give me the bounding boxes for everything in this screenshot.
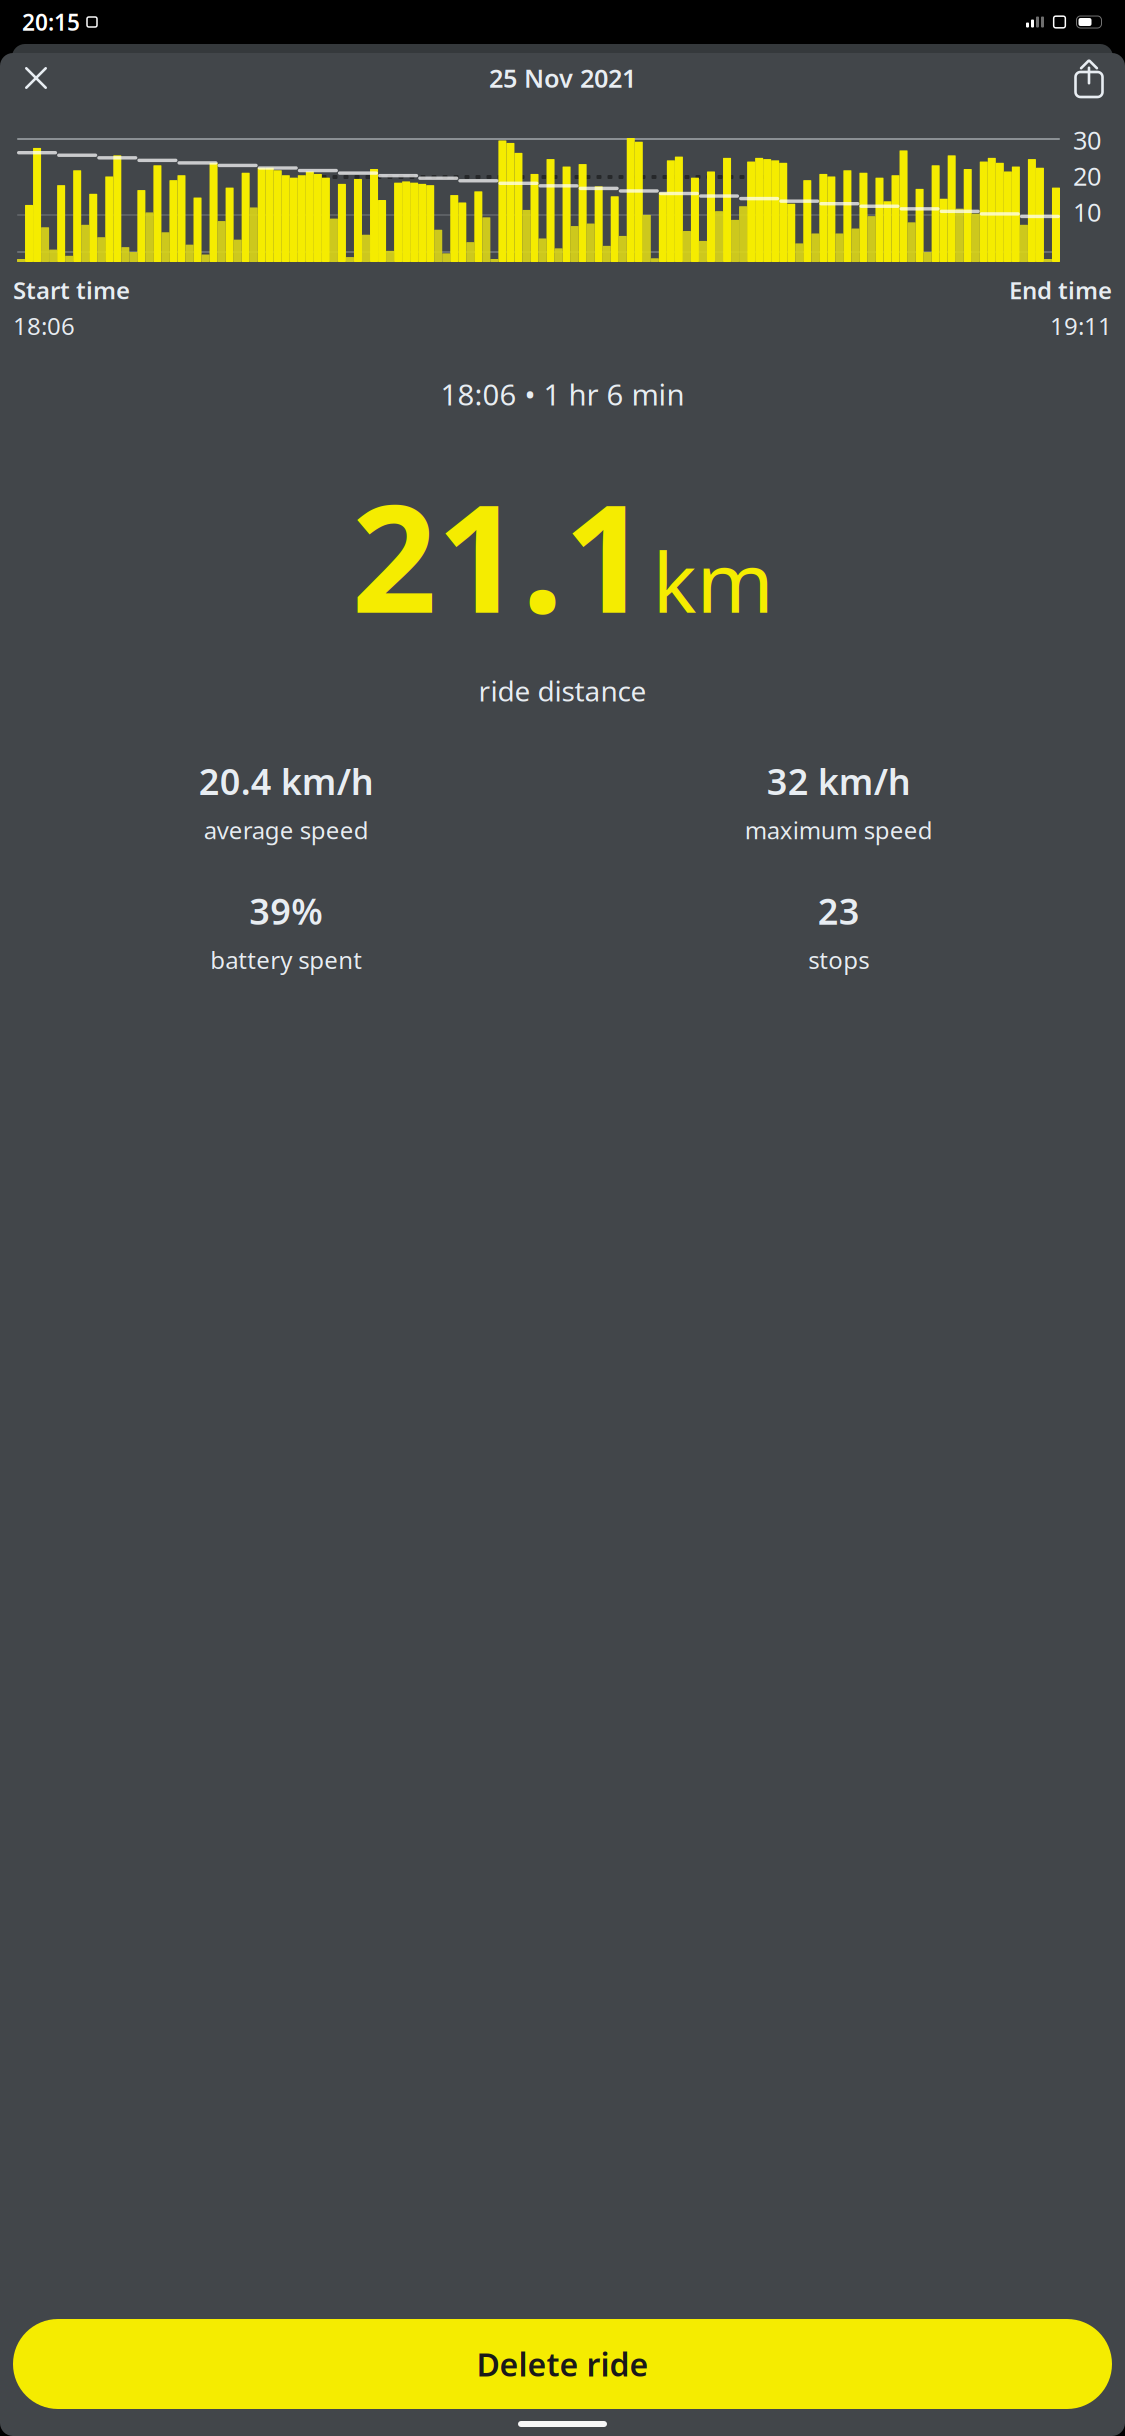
staticText: 20 (1073, 159, 1101, 193)
staticText: 39% (249, 887, 323, 935)
staticText: 25 Nov 2021 (489, 61, 636, 95)
button[interactable]: Share (1067, 56, 1111, 100)
staticText: Delete ride (476, 2343, 648, 2385)
staticText: 30 (1073, 123, 1101, 157)
staticText: ride distance (478, 672, 646, 709)
staticText: 23 (818, 887, 860, 935)
staticText: average speed (204, 814, 369, 846)
staticText: stops (808, 944, 869, 976)
staticText: 20:15 (22, 7, 80, 37)
staticText: 18:06 • 1 hr 6 min (440, 375, 684, 414)
staticText: 21.1 (351, 456, 648, 654)
button[interactable]: Close (14, 56, 58, 100)
button[interactable]: Delete ride (13, 2319, 1112, 2409)
staticText: battery spent (210, 944, 362, 976)
staticText: Start time (13, 274, 130, 306)
staticText: End time (1009, 274, 1112, 306)
staticText: 18:06 (13, 310, 75, 342)
staticText: maximum speed (745, 814, 933, 846)
staticText: 32 km/h (767, 757, 911, 805)
staticText: km (652, 526, 773, 636)
staticText: 20.4 km/h (199, 757, 374, 805)
staticText: 19:11 (1050, 310, 1112, 342)
staticText: 10 (1073, 195, 1101, 229)
